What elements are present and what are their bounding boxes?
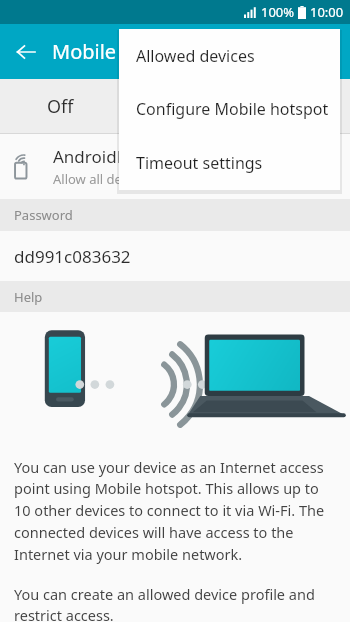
button[interactable]: Off [0,79,350,133]
button[interactable]: AndroidHotspot1234 [0,134,350,199]
button[interactable]: Timeout settings [119,136,340,190]
staticText: Configure Mobile hotspot [136,98,329,120]
staticText: Allow all devices to connect [53,170,220,188]
button[interactable]: Configure Mobile hotspot [119,82,340,136]
staticText: 100% [261,3,295,21]
staticText: You can create an allowed device profile… [14,584,336,622]
button[interactable]: dd991c083632 [0,231,350,281]
staticText: Mobile hotspot [52,38,195,65]
staticText: You can use your device as an Internet a… [14,457,336,565]
staticText: AndroidHotspot1234 [53,145,220,168]
button[interactable]: Back [8,34,44,70]
staticText: Off [47,94,74,119]
staticText: Password [14,206,73,224]
staticText: dd991c083632 [14,245,131,268]
staticText: 10:00 [310,3,344,21]
staticText: Allowed devices [136,45,255,67]
staticText: Help [14,288,43,306]
button[interactable]: Allowed devices [119,29,340,82]
staticText: Timeout settings [136,152,263,174]
